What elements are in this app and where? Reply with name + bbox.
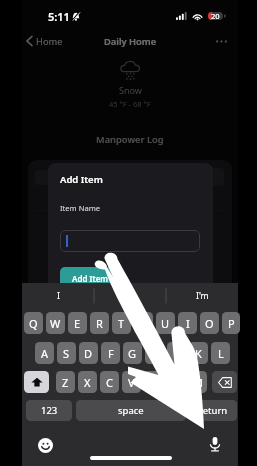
staticText: 123 xyxy=(41,404,58,417)
button[interactable]: I xyxy=(178,312,197,334)
staticText: Manpower Log xyxy=(96,133,164,146)
button[interactable]: O xyxy=(200,312,219,334)
staticText: F xyxy=(108,346,114,361)
button[interactable]: More options xyxy=(208,31,234,51)
button[interactable]: J xyxy=(167,342,186,364)
button[interactable]: Shift xyxy=(24,371,49,393)
staticText: A xyxy=(41,346,49,361)
button[interactable]: F xyxy=(101,342,120,364)
staticText: G xyxy=(128,346,137,361)
button[interactable] xyxy=(94,283,166,308)
staticText: H xyxy=(150,346,159,361)
button[interactable]: space xyxy=(76,400,186,421)
staticText: 20 xyxy=(211,11,220,21)
staticText: 5:11 xyxy=(48,9,70,24)
button[interactable]: Y xyxy=(134,312,153,334)
button[interactable]: S xyxy=(57,342,76,364)
staticText: R xyxy=(96,316,103,331)
button[interactable]: 123 xyxy=(26,400,72,421)
staticText: P xyxy=(228,316,235,331)
button[interactable]: L xyxy=(211,342,230,364)
staticText: I'm xyxy=(196,290,209,302)
button[interactable]: I'm xyxy=(166,283,238,308)
staticText: Z xyxy=(62,375,69,390)
button[interactable]: X xyxy=(78,371,97,393)
button[interactable]: M xyxy=(188,371,207,393)
staticText: I xyxy=(186,316,190,331)
button[interactable]: Q xyxy=(24,312,43,334)
button[interactable]: W xyxy=(46,312,65,334)
staticText: return xyxy=(199,404,228,417)
staticText: Daily Home xyxy=(104,35,157,48)
staticText: Add Item xyxy=(72,273,109,284)
button[interactable]: C xyxy=(100,371,119,393)
button[interactable]: D xyxy=(79,342,98,364)
staticText: Q xyxy=(29,316,38,331)
button[interactable]: return xyxy=(190,400,237,421)
staticText: Add Item xyxy=(60,173,103,186)
staticText: Home xyxy=(36,35,63,48)
button[interactable]: U xyxy=(156,312,175,334)
staticText: M xyxy=(193,375,203,390)
staticText: S xyxy=(63,346,70,361)
staticText: Snow xyxy=(119,84,142,96)
staticText: L xyxy=(218,346,224,361)
staticText: O xyxy=(205,316,214,331)
button[interactable]: A xyxy=(35,342,54,364)
staticText: Item Name xyxy=(60,203,101,213)
staticText: 45 °F - 68 °F xyxy=(109,99,151,109)
button[interactable]: B xyxy=(144,371,163,393)
staticText: E xyxy=(74,316,81,331)
staticText: V xyxy=(128,375,135,390)
staticText: I xyxy=(57,290,60,302)
staticText: X xyxy=(84,375,91,390)
button[interactable]: Dictate xyxy=(207,436,223,452)
button[interactable]: Add Item xyxy=(60,267,120,289)
button[interactable]: I xyxy=(22,283,94,308)
button[interactable]: R xyxy=(90,312,109,334)
staticText: W xyxy=(50,316,61,331)
staticText: T xyxy=(118,316,125,331)
button[interactable]: G xyxy=(123,342,142,364)
button[interactable]: Home xyxy=(26,31,63,51)
staticText: space xyxy=(118,404,144,417)
button[interactable]: V xyxy=(122,371,141,393)
button[interactable]: P xyxy=(222,312,240,334)
button[interactable]: E xyxy=(68,312,87,334)
staticText: D xyxy=(84,346,93,361)
staticText: K xyxy=(195,346,202,361)
button[interactable]: T xyxy=(112,312,131,334)
button[interactable]: Backspace xyxy=(212,371,237,393)
button[interactable]: Z xyxy=(56,371,75,393)
button[interactable] xyxy=(60,230,200,252)
button[interactable]: K xyxy=(189,342,208,364)
staticText: C xyxy=(106,375,113,390)
staticText: U xyxy=(161,316,170,331)
button[interactable]: Close xyxy=(212,165,213,187)
button[interactable]: Emoji keyboard xyxy=(37,437,53,453)
button[interactable]: H xyxy=(145,342,164,364)
